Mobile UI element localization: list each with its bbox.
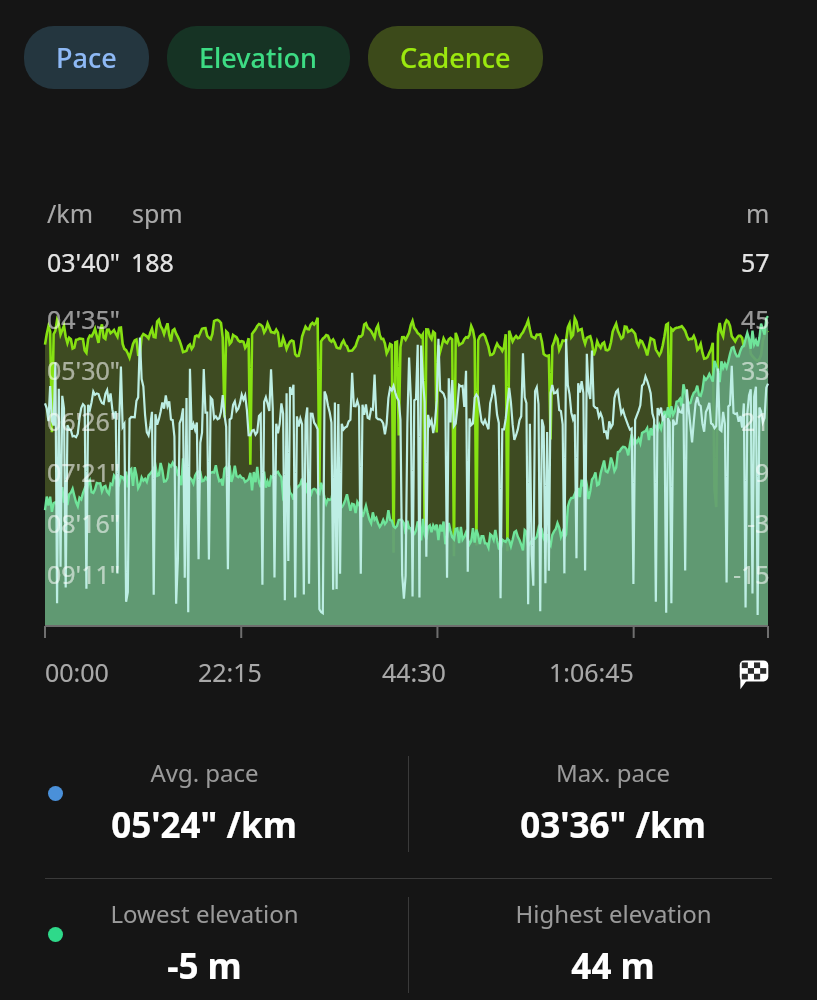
staticText: m xyxy=(746,196,770,230)
staticText: Lowest elevation xyxy=(110,897,299,930)
staticText: Avg. pace xyxy=(150,756,259,789)
staticText: -15 xyxy=(733,557,770,591)
staticText: 05'30" xyxy=(47,353,121,387)
staticText: 33 xyxy=(741,353,770,387)
button[interactable]: Lowest elevation xyxy=(0,879,817,1000)
staticText: Pace xyxy=(56,39,117,76)
staticText: spm xyxy=(132,196,183,230)
staticText: Max. pace xyxy=(556,756,670,789)
staticText: -3 xyxy=(747,506,770,540)
staticText: 05'24" /km xyxy=(111,801,297,849)
staticText: 03'40" xyxy=(47,245,121,279)
button[interactable]: Avg. pace xyxy=(0,738,817,878)
staticText: 21 xyxy=(741,404,770,438)
staticText: 03'36" /km xyxy=(520,801,706,849)
staticText: 00:00 xyxy=(45,655,109,689)
staticText: 57 xyxy=(741,245,770,279)
staticText: 44:30 xyxy=(382,655,446,689)
staticText: Cadence xyxy=(400,39,511,76)
staticText: Elevation xyxy=(199,39,318,76)
staticText: 45 xyxy=(741,302,770,336)
staticText: 09'11" xyxy=(47,557,121,591)
button[interactable]: Cadence xyxy=(368,26,543,89)
staticText: Highest elevation xyxy=(515,897,712,930)
staticText: 04'35" xyxy=(47,302,121,336)
button[interactable]: Elevation xyxy=(167,26,350,89)
staticText: 22:15 xyxy=(198,655,262,689)
staticText: -5 m xyxy=(167,942,242,990)
staticText: 08'16" xyxy=(47,506,121,540)
staticText: 06'26" xyxy=(47,404,121,438)
staticText: 188 xyxy=(131,245,174,279)
staticText: 1:06:45 xyxy=(549,655,634,689)
staticText: 44 m xyxy=(571,942,655,990)
staticText: /km xyxy=(47,196,94,230)
other: Finish xyxy=(737,657,771,691)
staticText: 9 xyxy=(755,455,770,489)
button[interactable]: Pace xyxy=(24,26,149,89)
staticText: 07'21" xyxy=(47,455,121,489)
